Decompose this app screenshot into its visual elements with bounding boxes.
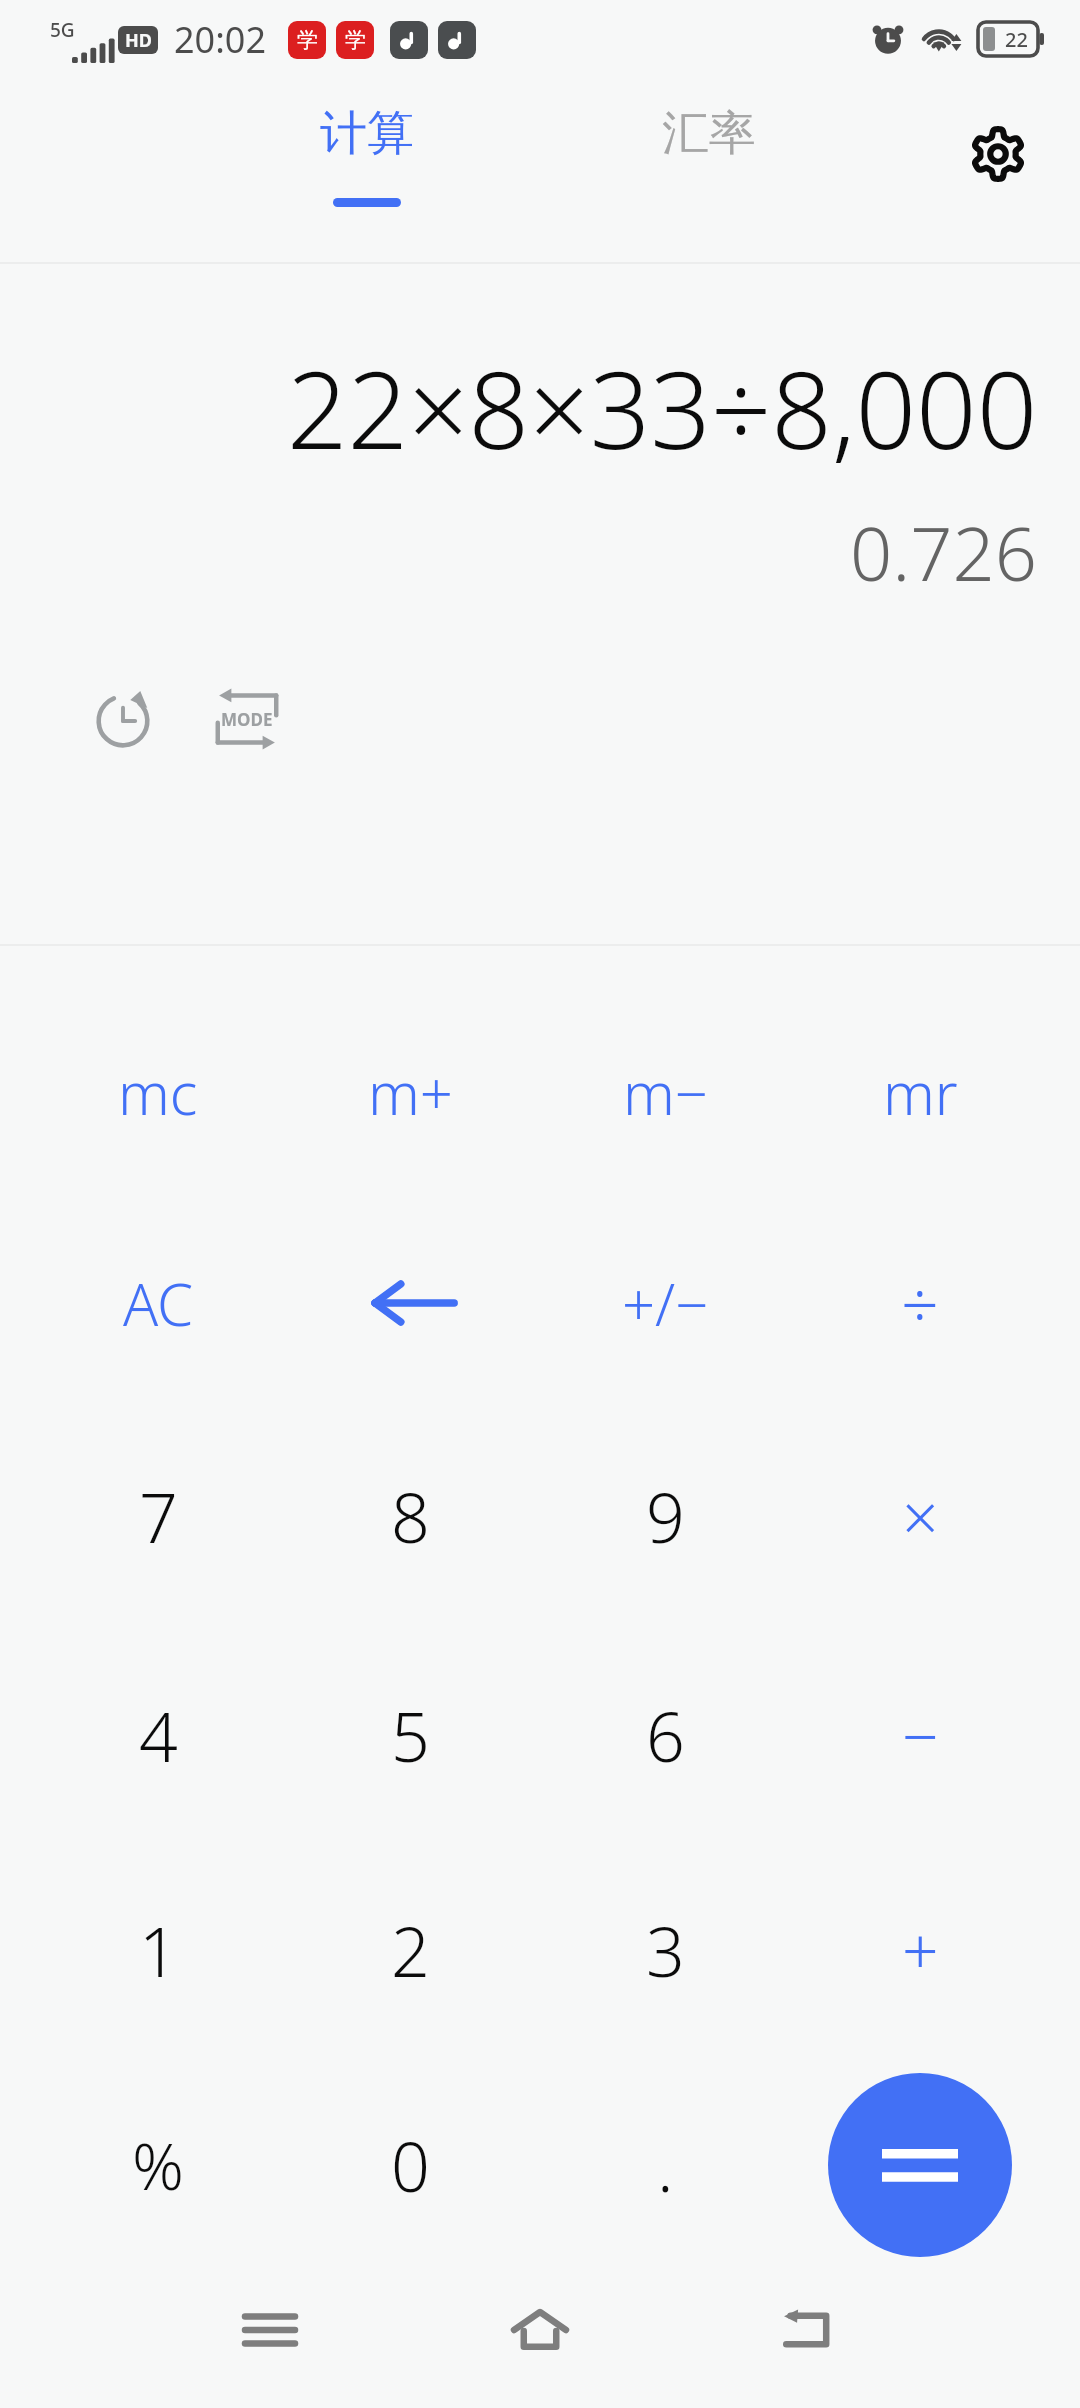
button[interactable]: × <box>808 1434 1032 1598</box>
staticText: 计算 <box>320 104 414 163</box>
button[interactable]: % <box>46 2083 270 2247</box>
button[interactable]: 2 <box>298 1868 522 2032</box>
staticText: 22×8×33÷8,000 <box>287 336 1038 480</box>
staticText: % <box>132 2122 184 2209</box>
button[interactable]: AC <box>46 1221 270 1385</box>
staticText: 22 <box>1005 26 1028 53</box>
staticText: 8 <box>391 1470 430 1563</box>
button[interactable]: 汇率 <box>584 78 834 264</box>
button[interactable]: 1 <box>46 1868 270 2032</box>
button[interactable]: History <box>68 664 178 774</box>
button[interactable]: 5 <box>298 1653 522 1817</box>
staticText: m+ <box>368 1053 453 1132</box>
staticText: . <box>657 2119 674 2212</box>
button[interactable]: mc <box>46 1010 270 1174</box>
staticText: 7 <box>139 1470 178 1563</box>
staticText: + <box>902 1907 939 1994</box>
staticText: 5G <box>50 17 75 43</box>
button[interactable]: Back <box>750 2270 870 2390</box>
button[interactable]: m− <box>553 1010 777 1174</box>
button[interactable]: Backspace <box>298 1221 522 1385</box>
staticText: 汇率 <box>662 104 756 163</box>
staticText: − <box>902 1692 939 1779</box>
button[interactable]: 6 <box>553 1653 777 1817</box>
button[interactable]: Mode <box>192 664 302 774</box>
button[interactable]: +/− <box>553 1221 777 1385</box>
staticText: 5 <box>391 1689 430 1782</box>
staticText: 0 <box>391 2119 430 2212</box>
staticText: 9 <box>646 1470 685 1563</box>
staticText: 0.726 <box>850 502 1038 603</box>
button[interactable]: 8 <box>298 1434 522 1598</box>
staticText: ÷ <box>901 1258 939 1348</box>
staticText: AC <box>123 1264 194 1343</box>
button[interactable]: . <box>553 2083 777 2247</box>
staticText: m− <box>623 1053 708 1132</box>
staticText: +/− <box>622 1264 709 1343</box>
button[interactable]: 4 <box>46 1653 270 1817</box>
staticText: 1 <box>139 1904 178 1997</box>
button[interactable]: Settings <box>942 98 1054 210</box>
staticText: 6 <box>646 1689 685 1782</box>
button[interactable]: ÷ <box>808 1221 1032 1385</box>
button[interactable]: − <box>808 1653 1032 1817</box>
button[interactable]: 7 <box>46 1434 270 1598</box>
button[interactable]: Home <box>480 2270 600 2390</box>
button[interactable]: m+ <box>298 1010 522 1174</box>
staticText: 学 <box>297 27 318 53</box>
staticText: 3 <box>646 1904 685 1997</box>
button[interactable]: 3 <box>553 1868 777 2032</box>
button[interactable]: mr <box>808 1010 1032 1174</box>
staticText: 学 <box>345 27 366 53</box>
staticText: HD <box>125 28 152 53</box>
staticText: 2 <box>391 1904 430 1997</box>
staticText: MODE <box>221 708 273 731</box>
button[interactable]: Recent apps <box>210 2270 330 2390</box>
button[interactable]: Equals <box>828 2073 1012 2257</box>
button[interactable]: 计算 <box>242 78 492 264</box>
button[interactable]: + <box>808 1868 1032 2032</box>
staticText: 20:02 <box>174 15 267 64</box>
staticText: 4 <box>139 1689 178 1782</box>
button[interactable]: 0 <box>298 2083 522 2247</box>
staticText: × <box>902 1473 939 1560</box>
staticText: mc <box>118 1053 198 1132</box>
button[interactable]: 9 <box>553 1434 777 1598</box>
staticText: mr <box>883 1053 958 1132</box>
